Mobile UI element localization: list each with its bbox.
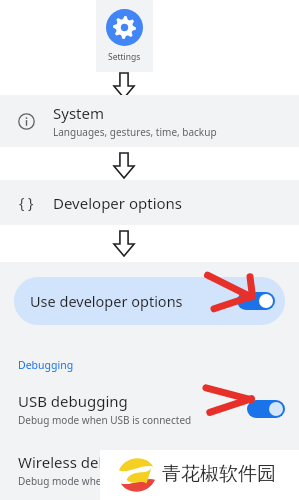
button[interactable]: Settings [96,0,153,72]
staticText: Developer options [53,193,183,213]
staticText: Wireless debugging [18,452,158,472]
button[interactable]: System [0,95,299,147]
staticText: 青花椒软件园 [162,462,276,486]
staticText: Debug mode when Wi-Fi is connected [18,474,195,488]
button[interactable]: Use developer options [14,277,285,325]
staticText: USB debugging [18,391,128,411]
staticText: Languages, gestures, time, backup [53,125,217,139]
button[interactable]: USB debugging [0,388,299,430]
staticText: System [53,103,104,123]
staticText: Settings [108,51,141,63]
staticText: Debugging [18,358,74,372]
button[interactable]: Wireless debugging [18,452,195,488]
staticText: { } [19,193,34,212]
other: Settings [106,9,143,46]
staticText: Debug mode when USB is connected [18,413,192,427]
staticText: Use developer options [30,291,237,311]
button[interactable]: { } [0,180,299,225]
